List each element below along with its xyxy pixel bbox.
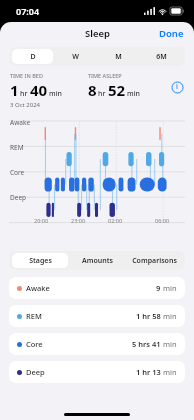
button[interactable]: D [12,49,53,64]
staticText: min [161,367,177,377]
staticText: Amounts [82,256,113,266]
button[interactable]: M [98,49,139,64]
staticText: 23:00 [71,217,86,224]
staticText: 5 hrs 41 [132,339,161,349]
staticText: 06:00 [155,217,170,224]
staticText: min [127,89,140,99]
staticText: hr [20,89,28,99]
staticText: Stages [29,256,52,266]
staticText: 9 [156,283,161,293]
staticText: 1 hr 13 [136,367,161,377]
staticText: M [115,52,122,62]
button[interactable]: Done [149,24,194,43]
button[interactable]: Comparisons [127,253,182,268]
staticText: Deep [10,193,27,202]
staticText: REM [26,311,42,321]
button[interactable]: Core [9,333,185,355]
staticText: 07:04 [16,5,40,17]
button[interactable]: 6M [141,49,182,64]
button[interactable]: Stages [12,253,68,268]
staticText: 1 hr 58 [136,311,161,321]
staticText: TIME ASLEEP [88,72,122,79]
staticText: min [161,283,177,293]
staticText: 02:00 [108,217,123,224]
staticText: 52 [108,80,126,100]
staticText: Deep [26,367,45,377]
staticText: Core [10,168,25,177]
staticText: TIME IN BED [10,72,43,79]
staticText: Done [159,27,184,40]
staticText: Core [26,339,43,349]
staticText: Comparisons [132,256,177,266]
button[interactable]: Deep [9,361,185,383]
button[interactable]: REM [9,305,185,327]
button[interactable]: About sleep data [170,80,184,94]
staticText: Awake [10,118,31,127]
staticText: 8 [88,80,97,100]
staticText: 20:00 [34,217,49,224]
staticText: min [49,89,62,99]
staticText: i [176,82,178,92]
staticText: D [30,52,36,62]
button[interactable]: Awake [9,277,185,299]
button[interactable]: W [55,49,96,64]
staticText: REM [10,143,24,152]
button[interactable]: Amounts [70,253,125,268]
staticText: 6M [156,52,167,62]
staticText: Awake [26,283,50,293]
staticText: 3 Oct 2024 [10,101,41,109]
staticText: min [161,339,177,349]
staticText: 40 [30,80,48,100]
staticText: Sleep [85,27,110,40]
staticText: 1 [10,80,19,100]
staticText: hr [98,89,106,99]
staticText: W [72,52,79,62]
staticText: min [161,311,177,321]
